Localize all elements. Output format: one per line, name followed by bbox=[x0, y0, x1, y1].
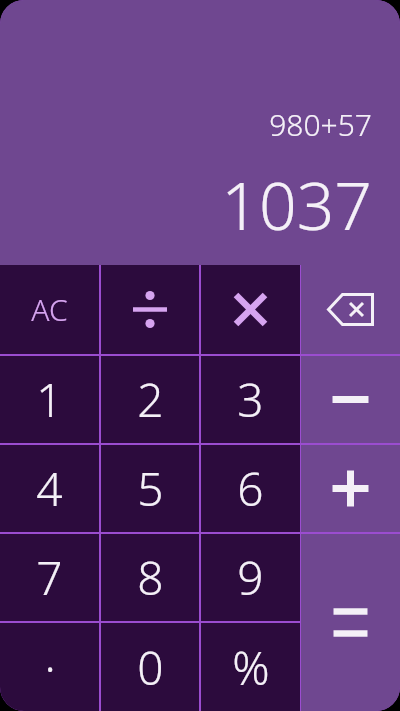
button[interactable]: Equals bbox=[301, 534, 400, 711]
button[interactable]: Minus bbox=[301, 356, 400, 443]
staticText: 1037 bbox=[221, 159, 372, 249]
button[interactable]: % bbox=[201, 623, 300, 711]
button[interactable]: 3 bbox=[201, 356, 300, 443]
button[interactable]: 0 bbox=[101, 623, 199, 711]
button[interactable]: Backspace bbox=[301, 265, 400, 354]
staticText: 9 bbox=[237, 546, 264, 609]
button[interactable]: · bbox=[0, 623, 99, 711]
button[interactable]: 5 bbox=[101, 445, 199, 532]
staticText: 7 bbox=[36, 546, 63, 609]
staticText: 8 bbox=[137, 546, 164, 609]
staticText: % bbox=[232, 636, 270, 699]
staticText: 4 bbox=[36, 457, 63, 520]
button[interactable]: Multiply bbox=[201, 265, 300, 354]
button[interactable]: Plus bbox=[301, 445, 400, 532]
staticText: 5 bbox=[137, 457, 164, 520]
staticText: 6 bbox=[237, 457, 264, 520]
button[interactable]: 6 bbox=[201, 445, 300, 532]
staticText: · bbox=[44, 636, 56, 699]
button[interactable]: 8 bbox=[101, 534, 199, 621]
button[interactable]: Divide bbox=[101, 265, 199, 354]
staticText: 3 bbox=[237, 368, 264, 431]
staticText: 2 bbox=[137, 368, 164, 431]
button[interactable]: 2 bbox=[101, 356, 199, 443]
staticText: 980+57 bbox=[269, 104, 372, 145]
button[interactable]: 9 bbox=[201, 534, 300, 621]
staticText: 1 bbox=[36, 368, 63, 431]
button[interactable]: AC bbox=[0, 265, 99, 354]
button[interactable]: 7 bbox=[0, 534, 99, 621]
staticText: 0 bbox=[137, 636, 164, 699]
button[interactable]: 1 bbox=[0, 356, 99, 443]
staticText: AC bbox=[31, 289, 68, 330]
button[interactable]: 4 bbox=[0, 445, 99, 532]
